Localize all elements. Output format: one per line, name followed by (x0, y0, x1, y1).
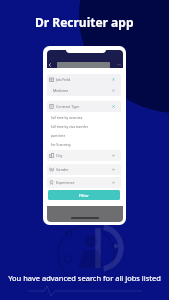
staticText: full time by new visa (51, 115, 83, 119)
staticText: for Scanning (51, 142, 71, 146)
button[interactable]: More options (117, 63, 121, 67)
button[interactable]: Medicine (47, 85, 121, 96)
staticText: full time by visa transfer (51, 124, 89, 128)
staticText: Contract Type (56, 104, 80, 109)
staticText: Medicine (53, 88, 69, 93)
staticText: Gender (56, 167, 69, 172)
button[interactable]: Back (47, 62, 53, 68)
button[interactable]: Job Field (47, 74, 121, 85)
button[interactable]: Contract Type (47, 101, 121, 112)
button[interactable]: for Scanning (47, 139, 121, 148)
button[interactable]: full time by new visa (47, 112, 121, 121)
button[interactable]: full time by visa transfer (47, 121, 121, 130)
button[interactable]: Experience (47, 177, 121, 188)
staticText: Dr Recruiter app (35, 14, 134, 30)
staticText: part time (51, 133, 66, 137)
staticText: City (56, 153, 63, 158)
button[interactable]: Gender (47, 164, 121, 175)
staticText: Experience (56, 180, 75, 185)
button[interactable]: City (47, 150, 121, 161)
staticText: You have advanced search for all jobs li… (8, 273, 161, 283)
staticText: Job Field (56, 77, 71, 82)
button[interactable]: part time (47, 130, 121, 139)
button[interactable]: Filter (48, 190, 120, 200)
staticText: Filter (79, 193, 89, 198)
